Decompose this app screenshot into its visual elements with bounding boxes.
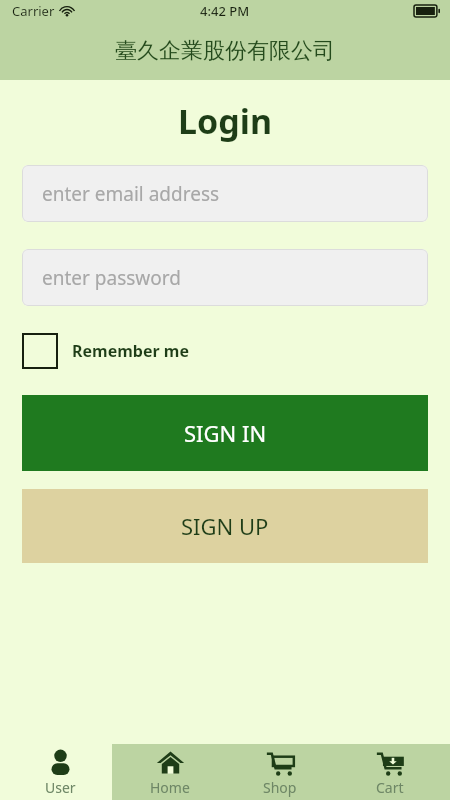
staticText: Remember me bbox=[72, 340, 189, 362]
button[interactable]: enter password bbox=[22, 249, 428, 306]
staticText: SIGN IN bbox=[184, 418, 267, 448]
staticText: Shop bbox=[263, 778, 297, 797]
button[interactable]: Cart bbox=[340, 744, 440, 800]
staticText: User bbox=[45, 778, 76, 797]
button[interactable]: SIGN UP bbox=[22, 489, 428, 563]
staticText: enter email address bbox=[42, 181, 220, 207]
staticText: Login bbox=[0, 98, 450, 144]
button[interactable]: Remember me bbox=[22, 331, 199, 371]
button[interactable]: Shop bbox=[230, 744, 330, 800]
button[interactable]: SIGN IN bbox=[22, 395, 428, 471]
button[interactable]: enter email address bbox=[22, 165, 428, 222]
staticText: Carrier bbox=[12, 2, 55, 20]
staticText: 臺久企業股份有限公司 bbox=[115, 37, 335, 65]
staticText: SIGN UP bbox=[181, 511, 269, 541]
button[interactable]: Home bbox=[120, 744, 220, 800]
staticText: Home bbox=[150, 778, 190, 797]
staticText: 4:42 PM bbox=[200, 2, 250, 20]
staticText: Cart bbox=[376, 778, 404, 797]
staticText: enter password bbox=[42, 265, 181, 291]
button[interactable]: User bbox=[10, 744, 110, 800]
